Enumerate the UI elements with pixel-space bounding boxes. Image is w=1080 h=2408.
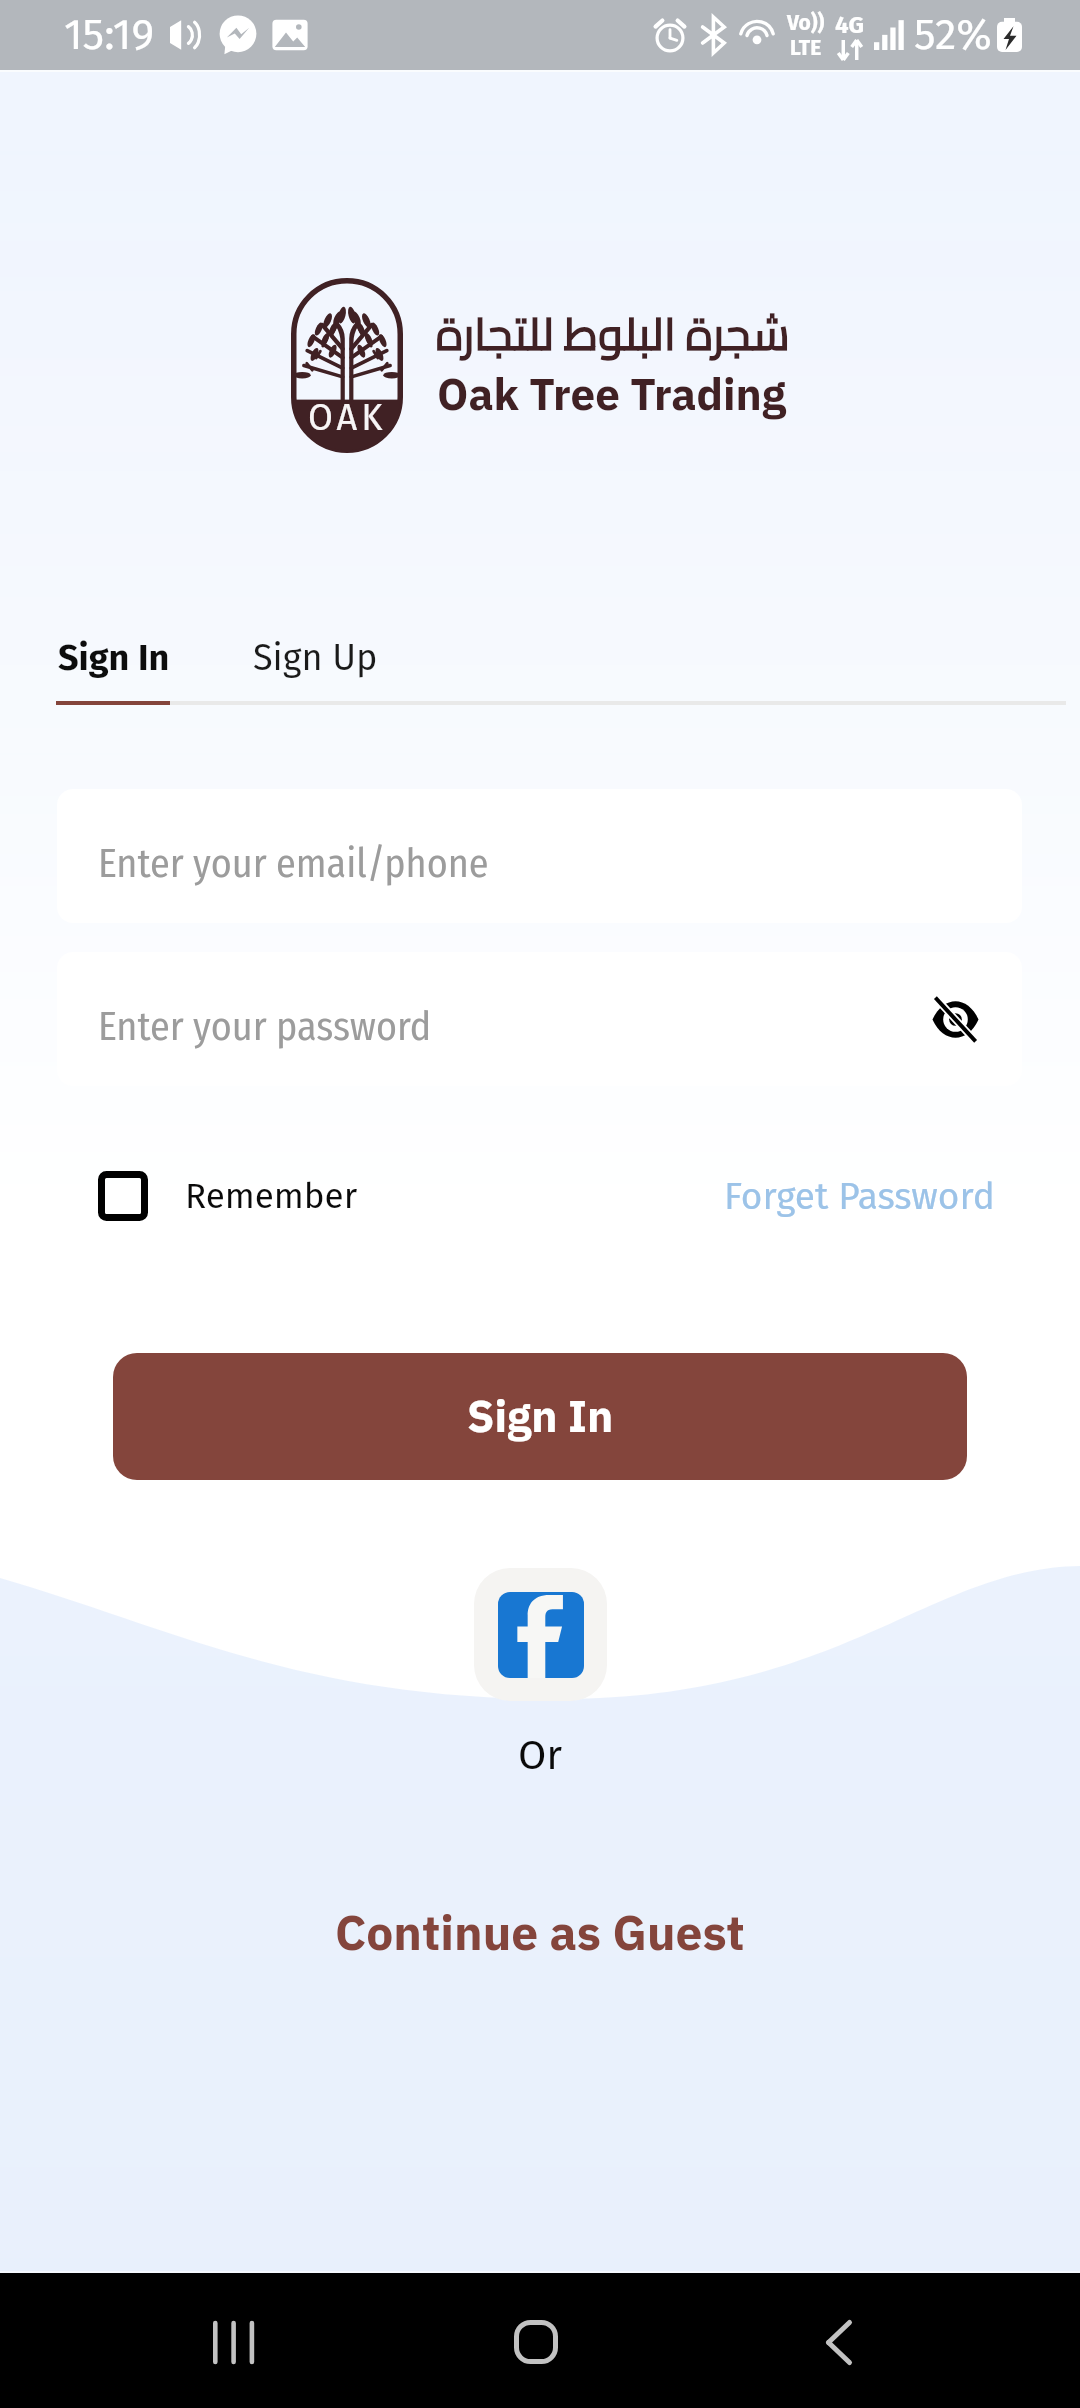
button[interactable]: Remember [90,1163,366,1229]
staticText: Or [518,1731,563,1780]
staticText: OAK [308,396,387,439]
staticText: 15:19 [64,9,154,61]
staticText: 52% [914,9,992,61]
staticText: Sign In [467,1384,614,1450]
staticText: Forget Password [724,1174,995,1218]
button[interactable]: Forget Password [716,1166,1003,1226]
button[interactable]: Enter your password [57,952,1022,1086]
staticText: LTE [790,35,822,60]
button[interactable]: Home [481,2287,591,2397]
button[interactable]: Continue as Guest [321,1892,759,1976]
button[interactable]: Back [784,2287,894,2397]
button[interactable]: Sign In [56,630,172,685]
staticText: شجرة البلوط للتجارة [436,291,790,375]
button[interactable]: Enter your email/phone [57,789,1022,923]
staticText: Sign In [58,636,170,679]
button[interactable]: Sign in with Facebook [474,1568,607,1701]
button[interactable]: Show password [922,986,988,1052]
button[interactable]: Sign Up [251,630,380,685]
button[interactable]: Sign In [113,1353,967,1480]
staticText: Oak Tree Trading [437,362,787,428]
staticText: Enter your email/phone [98,840,489,888]
staticText: Sign Up [253,636,378,679]
staticText: Vo)) [787,10,825,35]
button[interactable]: Recent apps [179,2287,289,2397]
staticText: 4G [835,11,865,40]
staticText: Enter your password [98,1003,432,1051]
staticText: Continue as Guest [335,1898,745,1970]
staticText: Remember [185,1175,358,1217]
